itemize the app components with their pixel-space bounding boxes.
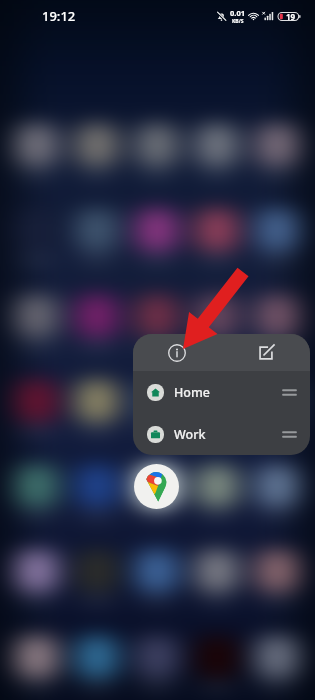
button[interactable]: App info [133, 334, 221, 371]
button[interactable]: Work [133, 413, 310, 455]
button[interactable]: Google Maps [134, 464, 179, 509]
staticText: Home [174, 384, 211, 401]
staticText: 0.01 [230, 8, 245, 18]
staticText: 19 [286, 11, 296, 22]
staticText: Work [174, 426, 206, 443]
staticText: KB/S [232, 18, 244, 25]
button[interactable]: Home [133, 371, 310, 413]
staticText: 19:12 [42, 7, 76, 25]
button[interactable]: Edit [221, 334, 310, 371]
